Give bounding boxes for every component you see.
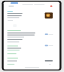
button[interactable]	[0, 0, 64, 72]
